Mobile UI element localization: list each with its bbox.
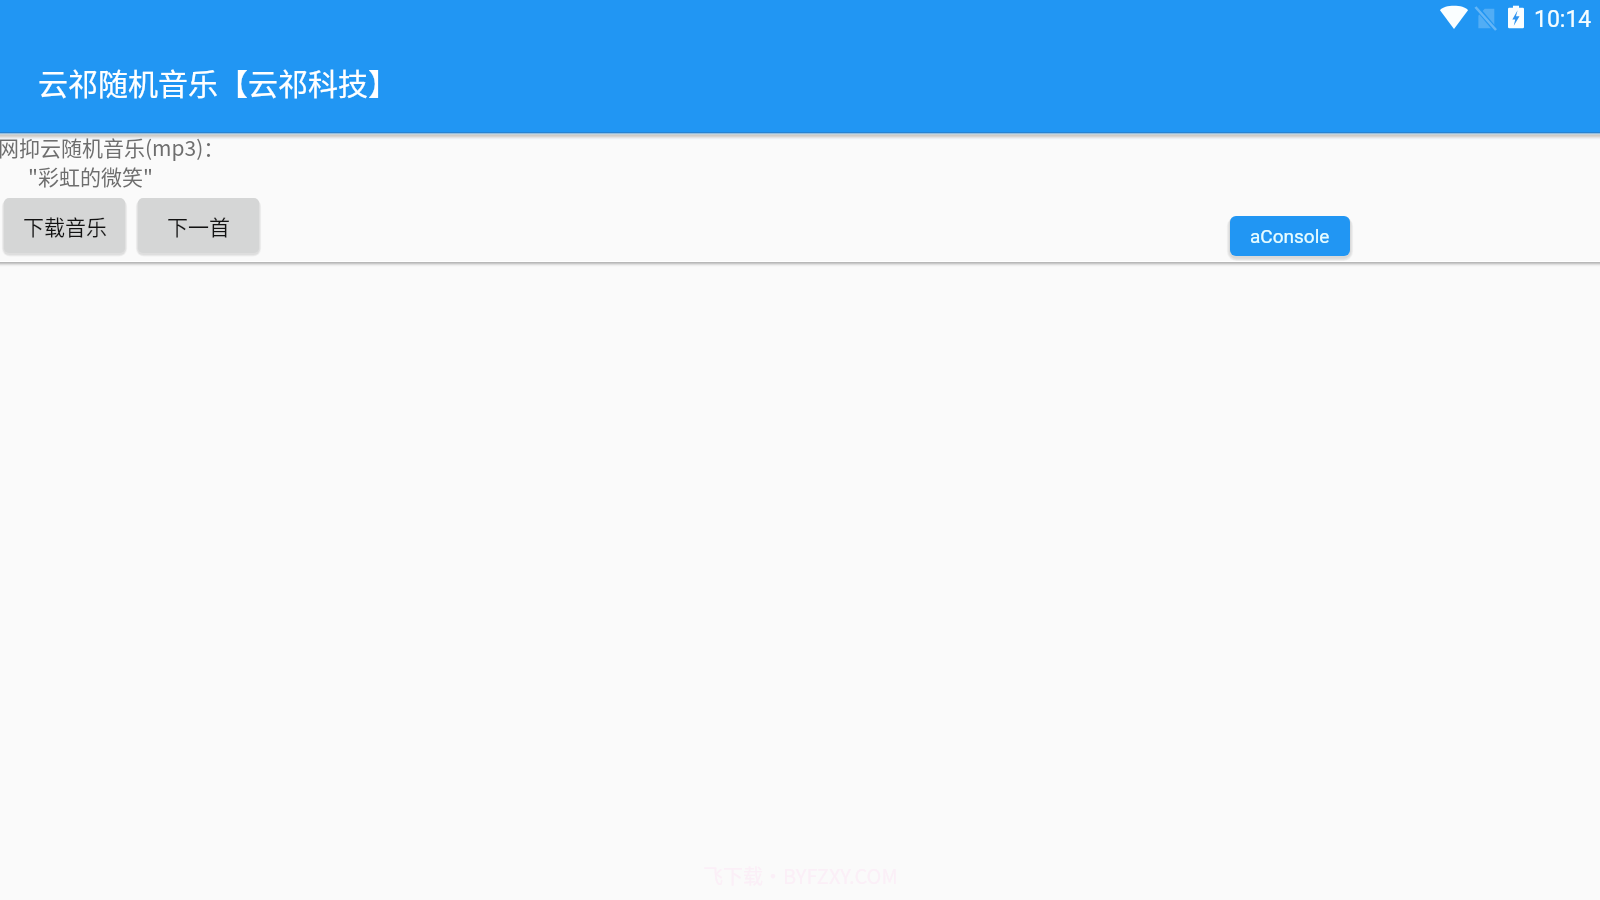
staticText: 下载音乐 (23, 211, 107, 241)
button[interactable]: 下一首 (138, 198, 259, 253)
staticText: 云祁随机音乐【云祁科技】 (38, 60, 398, 103)
button[interactable]: 下载音乐 (4, 198, 125, 253)
staticText: 下一首 (167, 211, 230, 241)
staticText: 网抑云随机音乐(mp3)： (0, 132, 225, 162)
other: No SIM card (1475, 7, 1496, 30)
other: Wi-Fi (1440, 5, 1468, 29)
button[interactable]: aConsole (1230, 216, 1350, 256)
staticText: 10:14 (1534, 6, 1592, 33)
staticText: aConsole (1250, 225, 1330, 247)
staticText: "彩虹的微笑" (28, 161, 153, 191)
staticText: 飞下载·BYFZXY.COM (703, 861, 898, 890)
other: Battery charging (1508, 5, 1524, 29)
